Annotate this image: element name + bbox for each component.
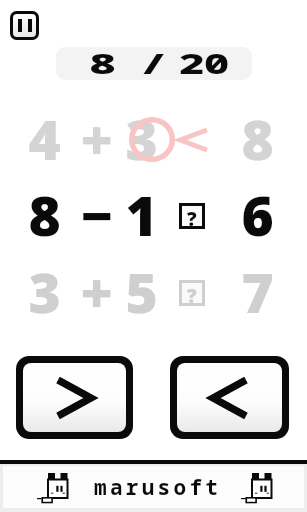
button[interactable]: Pause (13, 14, 36, 37)
button[interactable]: marusoft (3, 466, 304, 508)
staticText: 4 (28, 101, 61, 161)
staticText: ? (187, 206, 197, 226)
staticText: ? (187, 283, 197, 303)
button[interactable]: Greater than (23, 363, 126, 432)
staticText: − (80, 177, 113, 237)
staticText: 20 (178, 47, 229, 77)
staticText: + (80, 254, 113, 314)
staticText: 3 (125, 101, 158, 161)
staticText: 3 (28, 254, 61, 314)
staticText: 8 (28, 177, 61, 237)
staticText: marusoft (94, 473, 222, 502)
staticText: + (80, 101, 113, 161)
staticText: 8 (241, 101, 274, 161)
staticText: 5 (125, 254, 158, 314)
button[interactable]: Less than (177, 363, 282, 432)
staticText: 1 (125, 177, 158, 237)
staticText: / (139, 47, 167, 77)
staticText: 8 (88, 47, 117, 77)
staticText: 7 (241, 254, 274, 314)
staticText: 6 (241, 177, 274, 237)
button[interactable]: 8 (56, 47, 252, 80)
